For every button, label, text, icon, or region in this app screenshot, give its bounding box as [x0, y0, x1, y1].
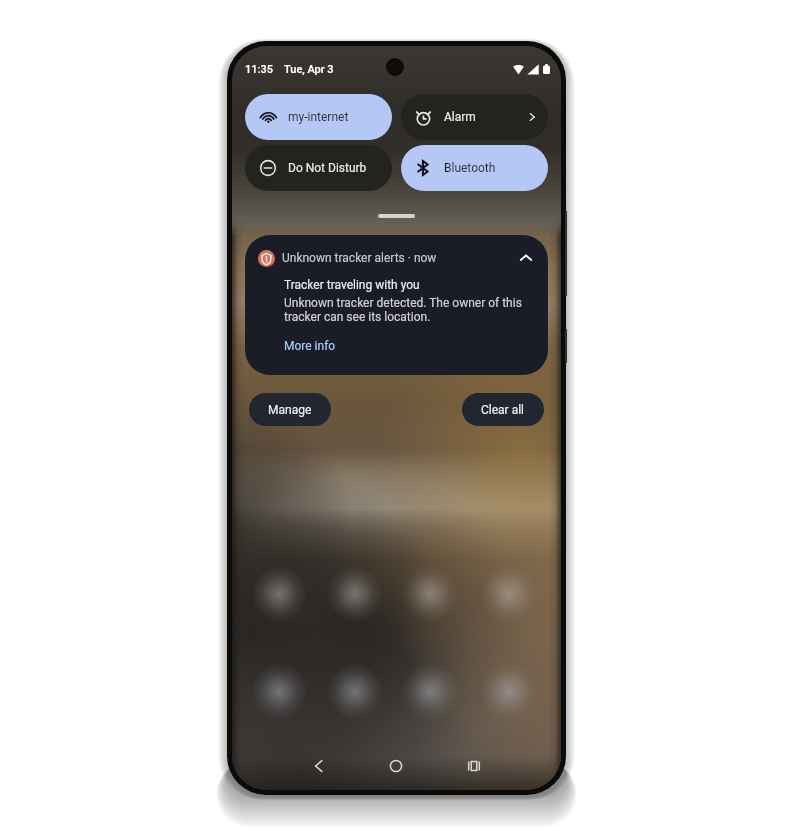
button[interactable]: my-internet [245, 94, 392, 140]
button[interactable]: Home [383, 753, 409, 779]
button[interactable]: Unknown tracker alerts · now [245, 235, 548, 375]
button[interactable]: Bluetooth [401, 145, 548, 191]
button[interactable]: Manage [249, 393, 331, 426]
staticText: Bluetooth [444, 161, 496, 175]
staticText: 11:35 [245, 63, 273, 76]
staticText: Alarm [444, 110, 476, 124]
button[interactable]: More info [284, 339, 336, 353]
staticText: Unknown tracker alerts · now [282, 251, 437, 265]
button[interactable]: Back [306, 753, 332, 779]
button[interactable]: Clear all [462, 393, 544, 426]
staticText: Unknown tracker detected. The owner of t… [284, 296, 526, 324]
staticText: Tracker traveling with you [284, 278, 420, 292]
button[interactable]: Collapse notification [516, 248, 536, 268]
staticText: Clear all [481, 403, 525, 417]
button[interactable]: Do Not Disturb [245, 145, 392, 191]
staticText: Tue, Apr 3 [284, 63, 334, 76]
button[interactable]: Recent apps [461, 753, 487, 779]
staticText: my-internet [288, 110, 349, 124]
staticText: Do Not Disturb [288, 161, 367, 175]
staticText: Manage [268, 403, 312, 417]
button[interactable]: Alarm [401, 94, 548, 140]
button[interactable]: Drag handle [378, 214, 415, 218]
